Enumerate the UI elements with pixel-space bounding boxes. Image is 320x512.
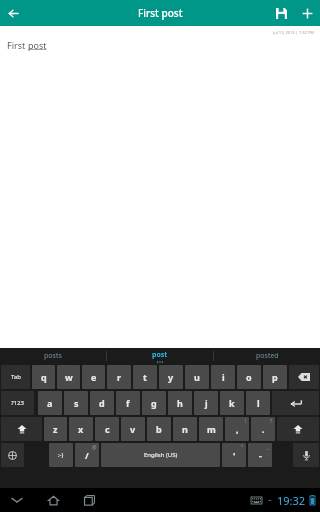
button[interactable]: o	[237, 365, 261, 389]
button[interactable]: k	[220, 391, 244, 415]
button[interactable]: Shift	[1, 417, 42, 441]
button[interactable]: English (US)	[101, 443, 220, 467]
staticText: :-)	[58, 451, 64, 459]
staticText: k	[229, 397, 235, 409]
staticText: @	[92, 444, 97, 451]
staticText: c	[105, 423, 110, 435]
button[interactable]: Hide keyboard	[6, 489, 28, 511]
button[interactable]: t	[133, 365, 157, 389]
staticText: .	[262, 423, 265, 435]
button[interactable]: w	[57, 365, 80, 389]
button[interactable]: ,	[225, 417, 249, 441]
staticText: p	[272, 371, 278, 383]
staticText: v	[130, 423, 136, 435]
button[interactable]: n	[173, 417, 197, 441]
button[interactable]: Recent apps	[78, 489, 100, 511]
staticText: post	[28, 39, 47, 51]
staticText: "	[241, 444, 244, 451]
button[interactable]: m	[199, 417, 223, 441]
button[interactable]: .	[251, 417, 275, 441]
button[interactable]: p	[263, 365, 287, 389]
staticText: ?	[270, 418, 273, 425]
staticText: –	[268, 495, 272, 505]
button[interactable]: :-)	[49, 443, 73, 467]
staticText: t	[143, 371, 147, 383]
button[interactable]: b	[147, 417, 171, 441]
staticText: u	[194, 371, 200, 383]
button[interactable]: posts	[0, 348, 106, 364]
button[interactable]: c	[95, 417, 119, 441]
button[interactable]: Home	[42, 489, 64, 511]
button[interactable]: '	[222, 443, 246, 467]
staticText: '	[233, 449, 236, 461]
button[interactable]: u	[185, 365, 209, 389]
staticText: b	[156, 423, 162, 435]
button[interactable]: Enter	[272, 391, 319, 415]
button[interactable]: s	[64, 391, 88, 415]
staticText: f	[126, 397, 130, 409]
staticText: Jul 13, 2015 | 7:32 PM	[0, 30, 314, 35]
button[interactable]: Back	[0, 0, 26, 26]
button[interactable]: h	[168, 391, 192, 415]
button[interactable]: j	[194, 391, 218, 415]
button[interactable]: i	[211, 365, 235, 389]
button[interactable]: e	[82, 365, 105, 389]
staticText: English (US)	[144, 451, 178, 459]
staticText: Tab	[11, 373, 21, 381]
staticText: d	[99, 397, 105, 409]
staticText: ?123	[11, 399, 24, 407]
staticText: z	[53, 423, 58, 435]
button[interactable]: post	[107, 348, 213, 364]
staticText: /	[85, 449, 89, 461]
button[interactable]: d	[90, 391, 114, 415]
button[interactable]: /	[75, 443, 99, 467]
button[interactable]: g	[142, 391, 166, 415]
button[interactable]: q	[32, 365, 55, 389]
staticText: o	[246, 371, 252, 383]
staticText: s	[74, 397, 79, 409]
button[interactable]: v	[121, 417, 145, 441]
staticText: h	[177, 397, 183, 409]
staticText: q	[41, 371, 47, 383]
button[interactable]: Voice input	[293, 443, 319, 467]
button[interactable]: Shift	[277, 417, 319, 441]
staticText: posts	[44, 351, 62, 361]
staticText: e	[91, 371, 97, 383]
button[interactable]: Save	[268, 0, 294, 26]
button[interactable]: posted	[214, 348, 320, 364]
button[interactable]: y	[159, 365, 183, 389]
staticText: First	[7, 39, 28, 51]
staticText: g	[151, 397, 157, 409]
button[interactable]: Change keyboard	[1, 443, 24, 467]
button[interactable]: a	[38, 391, 62, 415]
staticText: -	[259, 449, 262, 461]
button[interactable]: f	[116, 391, 140, 415]
staticText: !	[245, 418, 247, 425]
staticText: y	[168, 371, 174, 383]
button[interactable]: Add	[294, 0, 320, 26]
staticText: a	[47, 397, 53, 409]
staticText: posted	[256, 351, 279, 361]
staticText: m	[207, 423, 216, 435]
staticText: i	[222, 371, 225, 383]
button[interactable]: Keyboard layout	[248, 492, 264, 508]
button[interactable]: l	[246, 391, 270, 415]
button[interactable]: r	[107, 365, 131, 389]
staticText: post	[152, 350, 168, 360]
button[interactable]: Tab	[1, 365, 30, 389]
button[interactable]: z	[44, 417, 67, 441]
staticText: r	[117, 371, 122, 383]
staticText: w	[65, 371, 73, 383]
button[interactable]: Delete	[289, 365, 319, 389]
button[interactable]: -	[248, 443, 272, 467]
button[interactable]: x	[69, 417, 93, 441]
staticText: n	[182, 423, 188, 435]
staticText: _	[267, 444, 270, 451]
staticText: ,	[236, 423, 239, 435]
staticText: First post	[138, 6, 183, 20]
staticText: j	[205, 397, 208, 409]
staticText: 19:32	[277, 493, 306, 508]
staticText: x	[78, 423, 84, 435]
staticText: l	[257, 397, 260, 409]
button[interactable]: ?123	[1, 391, 34, 415]
